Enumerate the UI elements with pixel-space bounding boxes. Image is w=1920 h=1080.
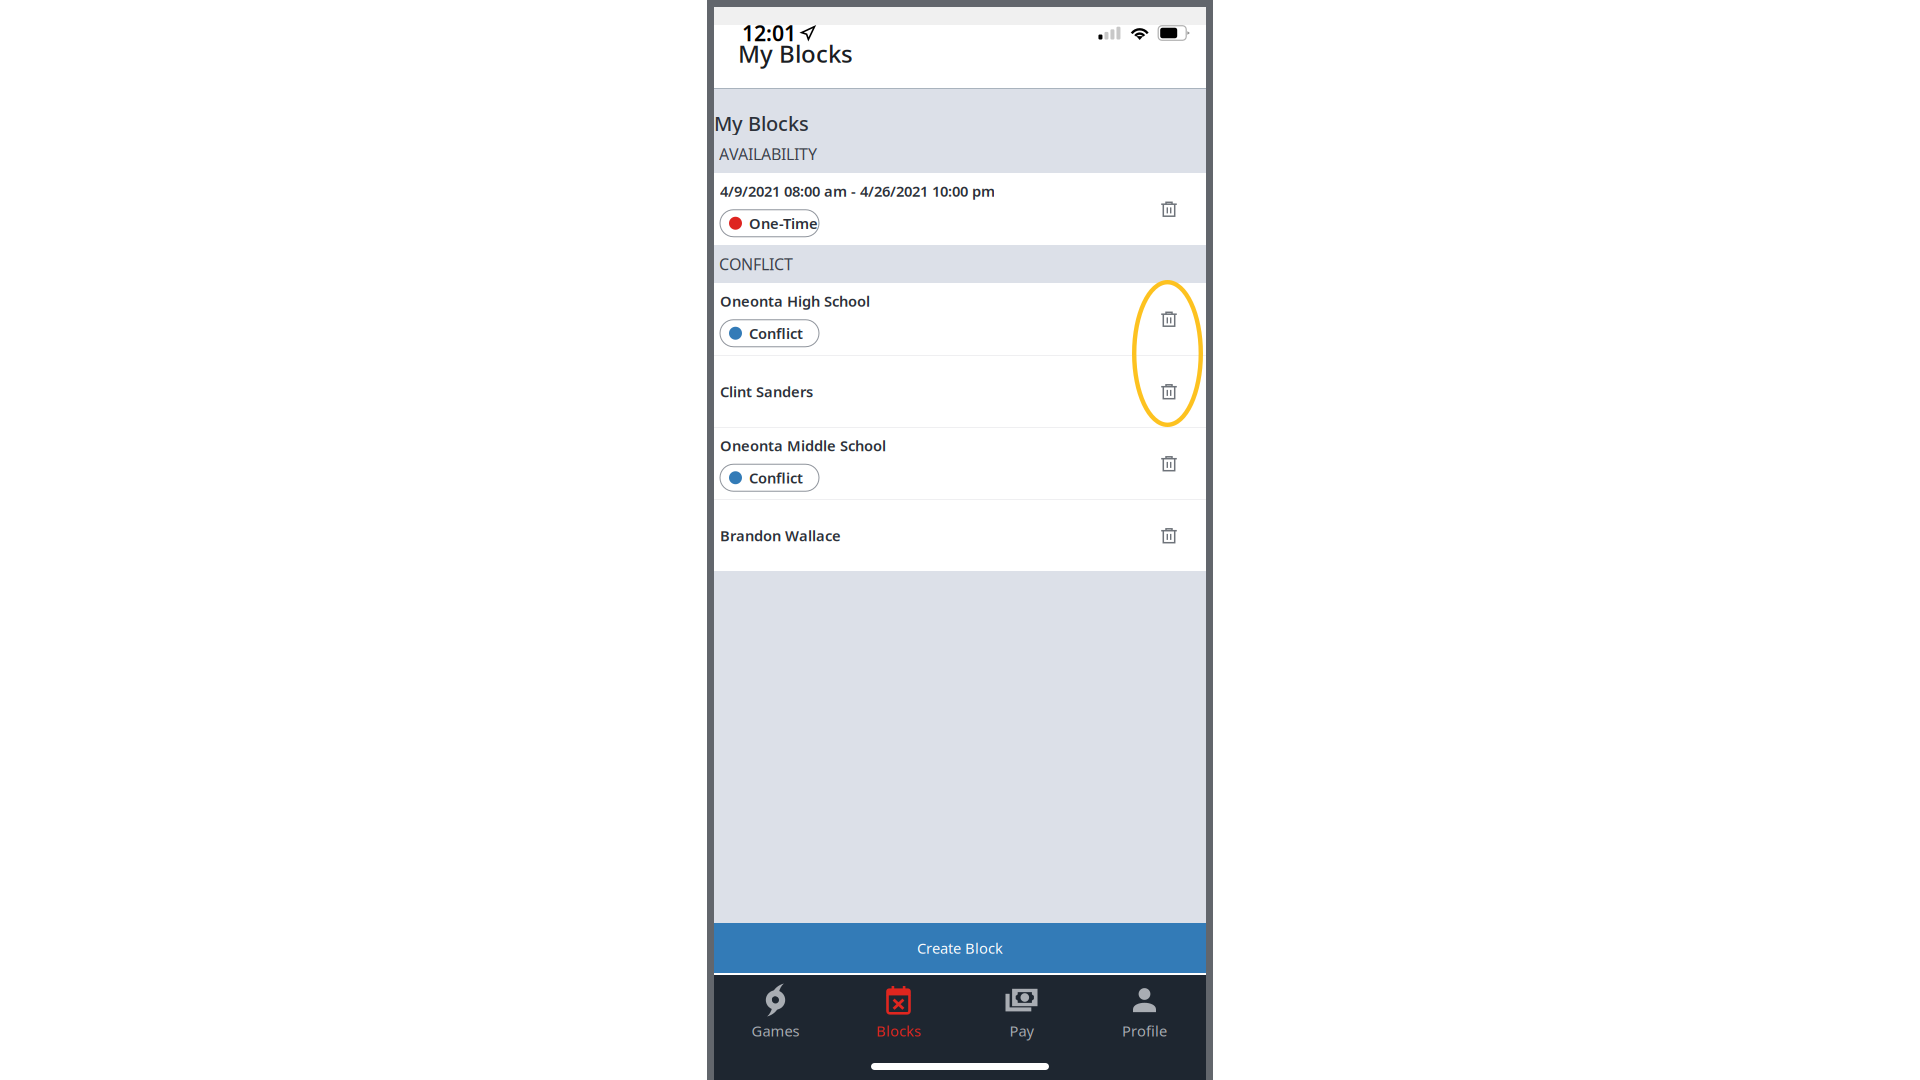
staticText: CONFLICT [719, 253, 793, 275]
staticText: Oneonta High School [720, 291, 870, 311]
button[interactable]: Delete Oneonta High School [1147, 297, 1206, 341]
staticText: Conflict [749, 468, 803, 487]
button[interactable]: Clint Sanders [714, 356, 1147, 427]
staticText: Conflict [749, 323, 803, 343]
staticText: AVAILABILITY [719, 143, 817, 165]
button[interactable]: Profile [1083, 975, 1206, 1050]
button[interactable]: 4/9/2021 08:00 am - 4/26/2021 10:00 pm [714, 173, 1147, 245]
staticText: One-Time [749, 213, 818, 233]
staticText: Blocks [876, 1021, 921, 1040]
staticText: Profile [1122, 1021, 1167, 1040]
staticText: Clint Sanders [720, 382, 813, 401]
button[interactable]: Delete Brandon Wallace [1147, 513, 1206, 557]
staticText: 12:01 [742, 19, 796, 47]
staticText: Brandon Wallace [720, 526, 841, 545]
button[interactable]: Games [714, 975, 837, 1050]
button[interactable]: Brandon Wallace [714, 500, 1147, 571]
staticText: Create Block [917, 938, 1003, 958]
button[interactable]: Oneonta High School [714, 283, 1147, 355]
button[interactable]: Delete Clint Sanders [1147, 369, 1206, 413]
staticText: My Blocks [738, 38, 853, 69]
staticText: Games [751, 1021, 799, 1040]
staticText: My Blocks [714, 110, 809, 137]
button[interactable]: Delete 4/9/2021 08:00 am - 4/26/2021 10:… [1147, 187, 1206, 231]
staticText: Oneonta Middle School [720, 436, 886, 455]
staticText: Pay [1009, 1021, 1033, 1040]
button[interactable]: Delete Oneonta Middle School [1147, 441, 1206, 485]
button[interactable]: Create Block [714, 923, 1206, 973]
button[interactable]: Pay [960, 975, 1083, 1050]
button[interactable]: Oneonta Middle School [714, 428, 1147, 499]
staticText: 4/9/2021 08:00 am - 4/26/2021 10:00 pm [720, 181, 995, 201]
button[interactable]: Blocks [837, 975, 960, 1050]
